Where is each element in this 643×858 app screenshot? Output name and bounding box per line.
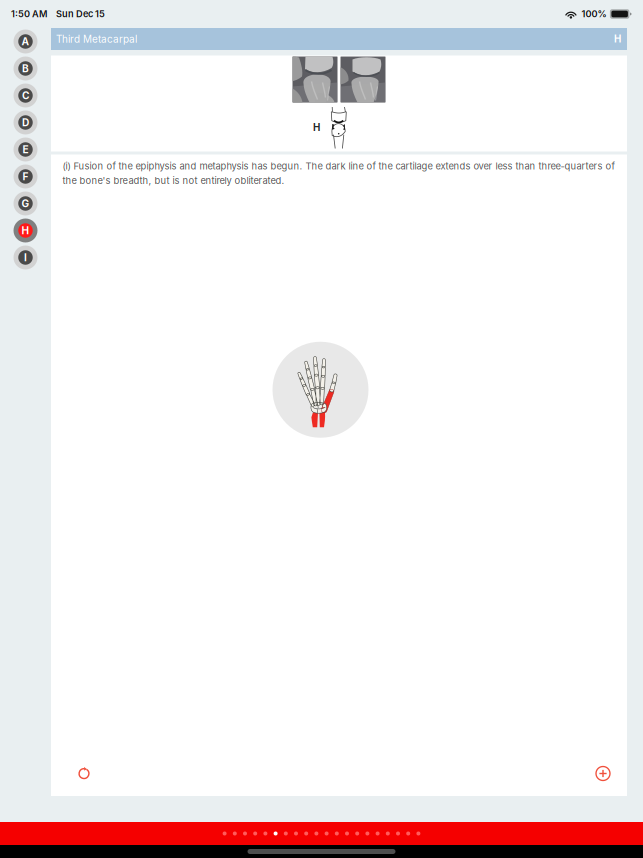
button[interactable]: Add <box>588 758 618 788</box>
staticText: D <box>22 116 29 129</box>
staticText: C <box>22 89 29 102</box>
staticText: Sun Dec 15 <box>56 8 105 19</box>
staticText: (i) Fusion of the epiphysis and metaphys… <box>62 160 614 186</box>
button[interactable]: A <box>0 28 50 55</box>
button[interactable]: C <box>0 82 50 109</box>
staticText: H <box>614 33 621 45</box>
button[interactable]: F <box>0 163 50 190</box>
staticText: 1:50 AM <box>11 8 47 19</box>
button[interactable]: Reset <box>69 758 99 789</box>
staticText: I <box>24 251 27 264</box>
staticText: F <box>22 170 28 183</box>
staticText: E <box>22 143 28 156</box>
button[interactable]: G <box>0 190 50 217</box>
button[interactable]: D <box>0 109 50 136</box>
staticText: A <box>21 35 29 48</box>
staticText: Third Metacarpal <box>56 33 137 45</box>
staticText: B <box>22 62 29 75</box>
staticText: H <box>21 224 29 237</box>
button[interactable]: B <box>0 55 50 82</box>
staticText: H <box>313 121 320 133</box>
button[interactable]: I <box>0 244 50 271</box>
staticText: G <box>21 197 29 210</box>
button[interactable]: H <box>0 217 50 244</box>
button[interactable]: E <box>0 136 50 163</box>
staticText: 100% <box>581 8 606 19</box>
